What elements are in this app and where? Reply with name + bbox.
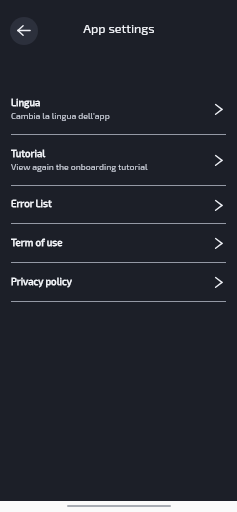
button[interactable]: Back [10, 17, 38, 45]
button[interactable]: Lingua [0, 83, 237, 134]
staticText: Lingua [11, 96, 41, 108]
staticText: App settings [83, 21, 155, 36]
staticText: Privacy policy [11, 275, 72, 287]
button[interactable]: Tutorial [0, 135, 237, 185]
staticText: Term of use [11, 236, 63, 248]
staticText: Error List [11, 197, 52, 209]
button[interactable]: Privacy policy [0, 263, 237, 301]
staticText: Cambia la lingua dell'app [11, 110, 110, 121]
staticText: Tutorial [11, 147, 46, 159]
staticText: View again the onboarding tutorial [11, 161, 148, 172]
button[interactable]: Term of use [0, 224, 237, 262]
button[interactable]: Error List [0, 186, 237, 223]
